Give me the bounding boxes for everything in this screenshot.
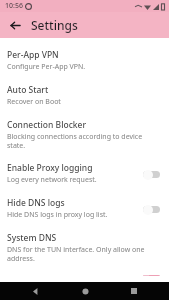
button[interactable]: Toggle off (140, 202, 162, 216)
staticText: System DNS (7, 232, 57, 244)
button[interactable]: Recent apps (119, 282, 149, 300)
staticText: Hide DNS logs in proxy log list. (7, 210, 108, 220)
staticText: Recover on Boot (7, 97, 61, 107)
staticText: Enable Proxy logging (7, 162, 93, 174)
button[interactable]: Toggle off (140, 167, 162, 181)
staticText: Per-App VPN (7, 49, 59, 61)
button[interactable]: Home (70, 282, 100, 300)
staticText: Log every network request. (7, 175, 97, 185)
staticText: Configure Per-App VPN. (7, 62, 86, 72)
staticText: Auto Start (7, 84, 49, 96)
button[interactable]: Enable Proxy logging (0, 156, 169, 191)
button[interactable]: Hide DNS logs (0, 191, 169, 226)
staticText: 10:56 (5, 1, 23, 11)
staticText: DNS for the TUN interface. Only allow on… (7, 245, 162, 263)
button[interactable]: Back (4, 14, 26, 36)
button[interactable]: Enable Fake DNS (0, 269, 169, 282)
button[interactable]: Toggle on (140, 275, 162, 276)
staticText: Blocking connections according to device… (7, 132, 162, 150)
staticText: Connection Blocker (7, 119, 87, 131)
button[interactable]: Per-App VPN (0, 43, 169, 78)
staticText: Hide DNS logs (7, 197, 65, 209)
button[interactable]: System DNS (0, 226, 169, 269)
button[interactable]: Connection Blocker (0, 113, 169, 156)
button[interactable]: Back (20, 282, 50, 300)
button[interactable]: Auto Start (0, 78, 169, 113)
staticText: Settings (31, 17, 78, 33)
